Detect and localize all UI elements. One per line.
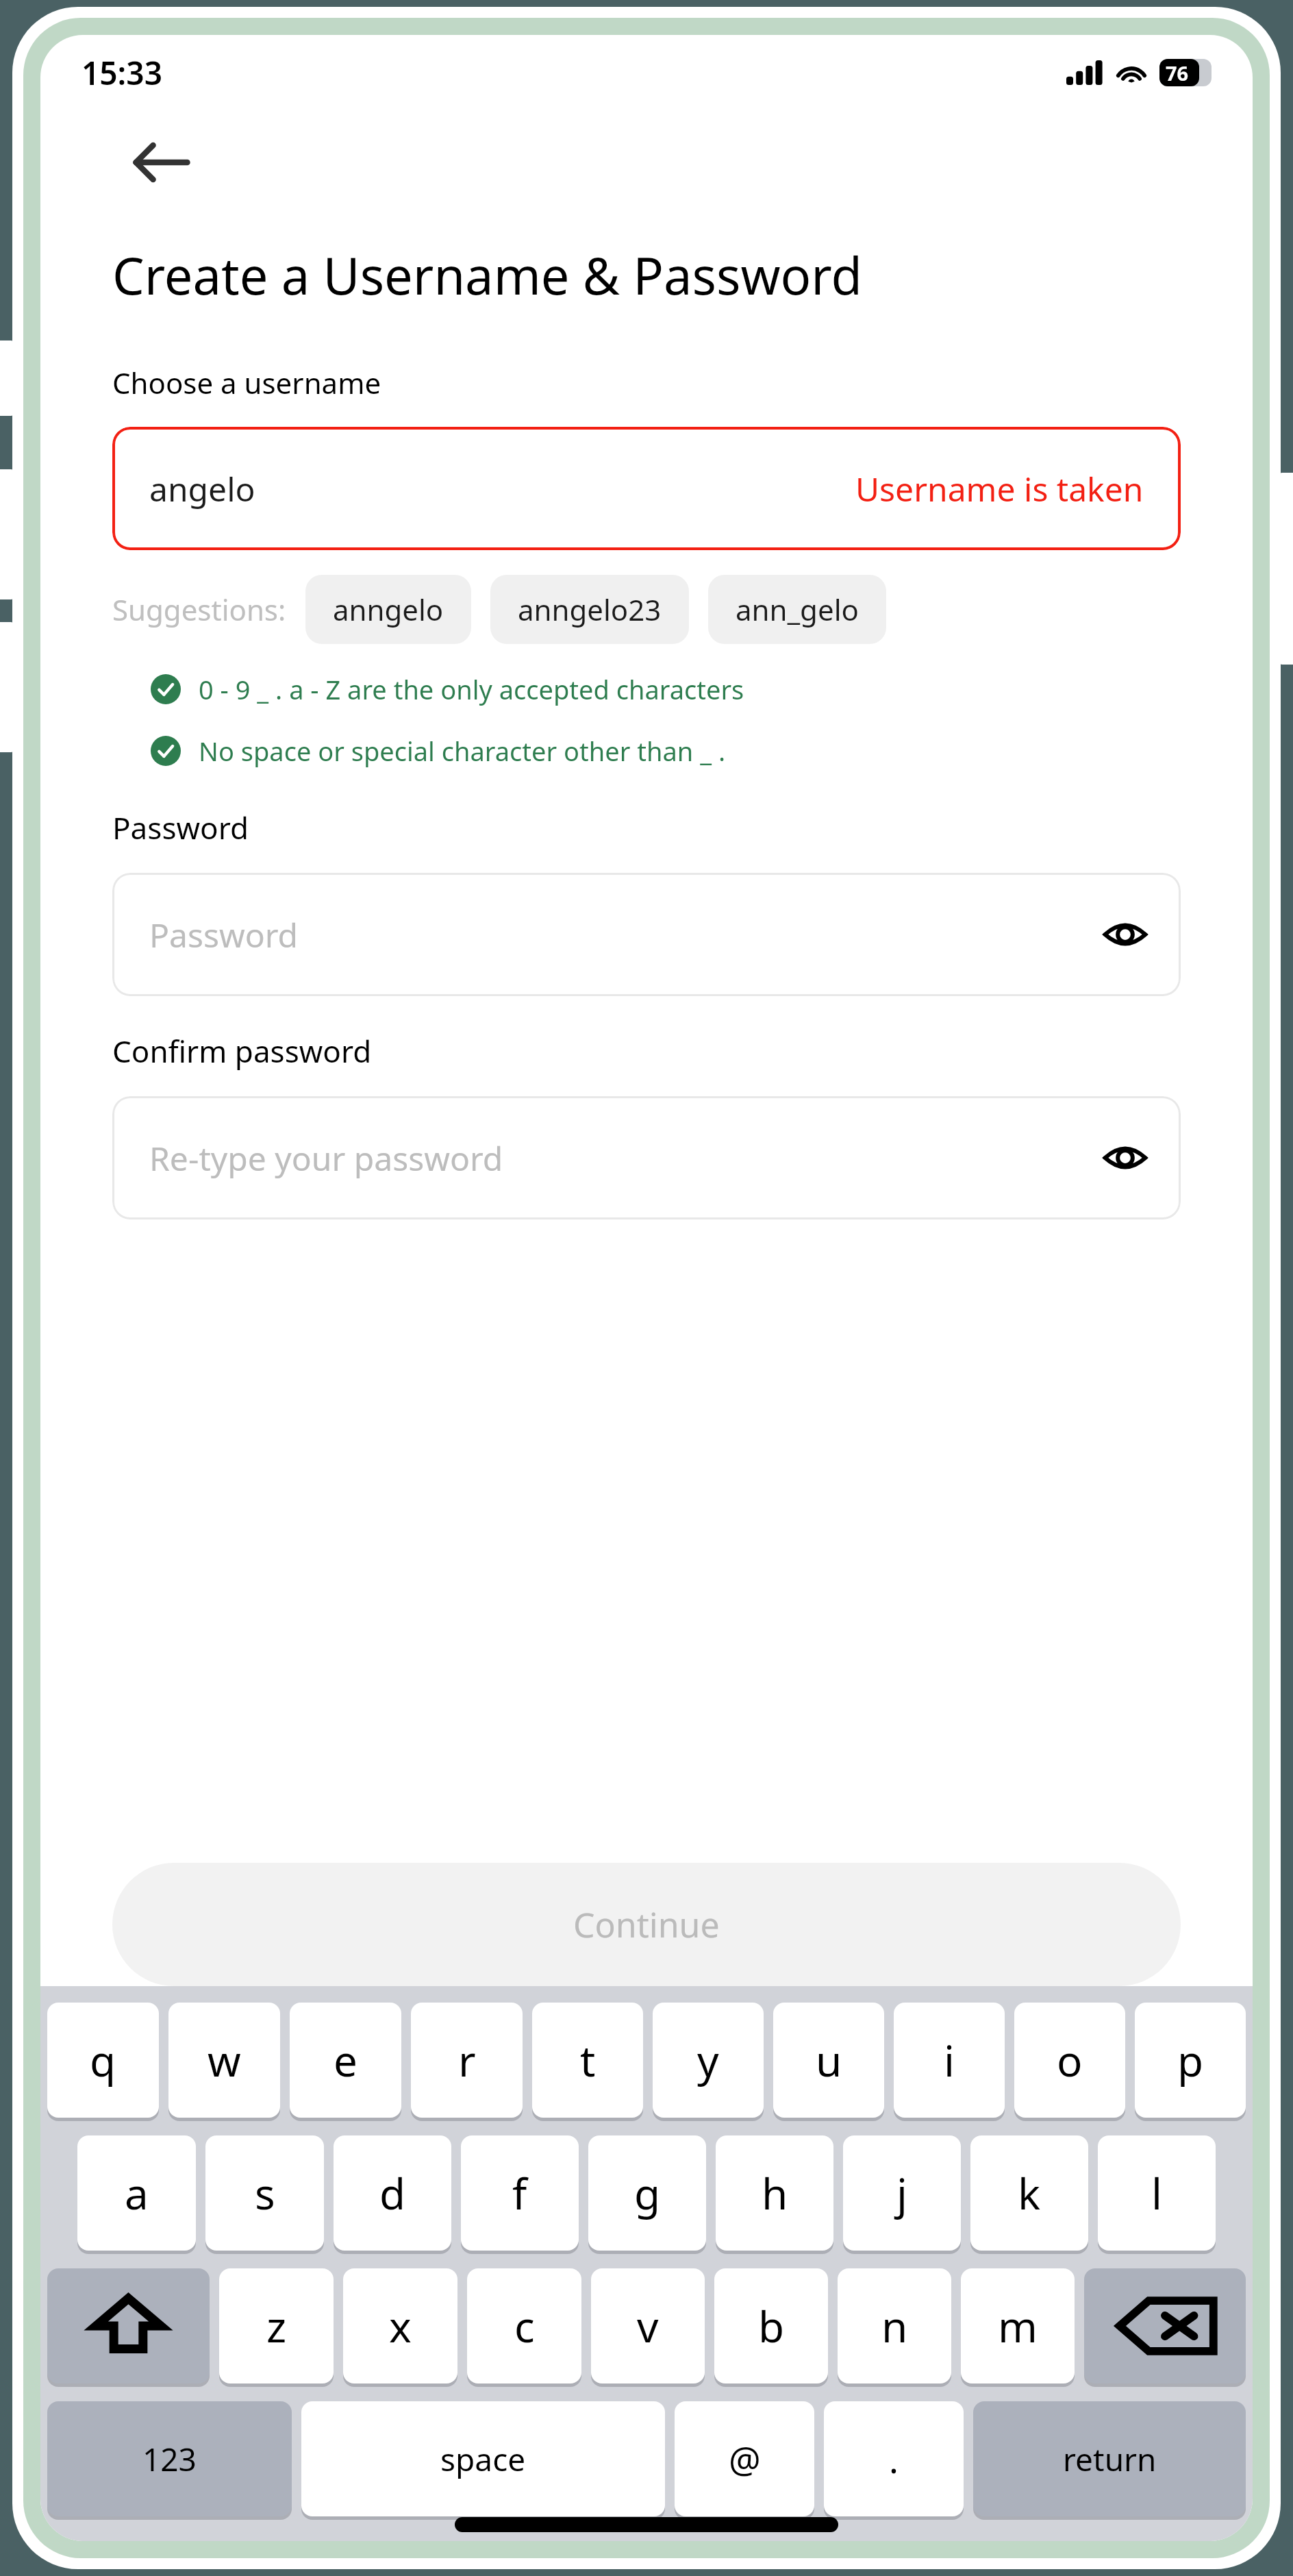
- button[interactable]: n: [838, 2268, 951, 2383]
- staticText: e: [334, 2031, 357, 2089]
- staticText: q: [90, 2031, 116, 2089]
- staticText: u: [816, 2031, 842, 2089]
- button[interactable]: Backspace: [1084, 2268, 1246, 2383]
- button[interactable]: .: [824, 2401, 964, 2516]
- staticText: a: [125, 2164, 149, 2222]
- staticText: space: [440, 2438, 526, 2481]
- button[interactable]: anngelo: [305, 575, 471, 644]
- staticText: v: [637, 2297, 659, 2355]
- button[interactable]: b: [714, 2268, 828, 2383]
- button[interactable]: anngelo23: [490, 575, 689, 644]
- staticText: 15:33: [81, 51, 162, 95]
- button[interactable]: h: [716, 2135, 833, 2251]
- button[interactable]: j: [843, 2135, 961, 2251]
- button[interactable]: @: [675, 2401, 814, 2516]
- button[interactable]: k: [970, 2135, 1088, 2251]
- button[interactable]: q: [47, 2003, 159, 2118]
- button[interactable]: w: [168, 2003, 280, 2118]
- button[interactable]: d: [334, 2135, 451, 2251]
- button[interactable]: g: [588, 2135, 706, 2251]
- staticText: 0 - 9 _ . a - Z are the only accepted ch…: [199, 671, 744, 707]
- button[interactable]: Shift: [47, 2268, 210, 2383]
- staticText: Username is taken: [855, 467, 1144, 511]
- staticText: z: [266, 2297, 287, 2355]
- button[interactable]: a: [77, 2135, 196, 2251]
- staticText: t: [580, 2031, 596, 2089]
- staticText: i: [944, 2031, 955, 2089]
- staticText: j: [896, 2164, 907, 2222]
- staticText: c: [514, 2297, 535, 2355]
- staticText: g: [634, 2164, 661, 2222]
- staticText: ann_gelo: [736, 590, 859, 629]
- button[interactable]: c: [467, 2268, 581, 2383]
- button[interactable]: z: [219, 2268, 334, 2383]
- button[interactable]: t: [532, 2003, 643, 2118]
- staticText: return: [1063, 2438, 1157, 2481]
- button[interactable]: Show password: [1101, 1134, 1149, 1182]
- staticText: 123: [142, 2438, 197, 2481]
- staticText: d: [379, 2164, 406, 2222]
- staticText: Continue: [573, 1901, 720, 1948]
- button[interactable]: Show password: [1101, 911, 1149, 958]
- staticText: Suggestions:: [112, 590, 286, 629]
- button[interactable]: Password: [112, 873, 1181, 996]
- staticText: k: [1018, 2164, 1041, 2222]
- button[interactable]: x: [343, 2268, 457, 2383]
- staticText: o: [1057, 2031, 1083, 2089]
- button[interactable]: y: [653, 2003, 764, 2118]
- staticText: @: [729, 2435, 761, 2484]
- button[interactable]: space: [301, 2401, 665, 2516]
- staticText: f: [512, 2164, 527, 2222]
- staticText: Password: [149, 913, 299, 957]
- staticText: Re-type your password: [149, 1136, 503, 1180]
- button[interactable]: e: [290, 2003, 401, 2118]
- button[interactable]: return: [973, 2401, 1246, 2516]
- staticText: s: [255, 2164, 275, 2222]
- staticText: Password: [112, 807, 249, 848]
- staticText: n: [881, 2297, 908, 2355]
- staticText: .: [889, 2435, 899, 2484]
- staticText: l: [1151, 2164, 1162, 2222]
- staticText: w: [208, 2031, 241, 2089]
- button[interactable]: Continue: [112, 1863, 1181, 1986]
- staticText: p: [1177, 2031, 1204, 2089]
- button[interactable]: o: [1014, 2003, 1125, 2118]
- button[interactable]: r: [411, 2003, 523, 2118]
- staticText: anngelo23: [518, 590, 662, 629]
- button[interactable]: l: [1098, 2135, 1216, 2251]
- staticText: h: [762, 2164, 788, 2222]
- button[interactable]: ann_gelo: [708, 575, 886, 644]
- staticText: No space or special character other than…: [199, 733, 726, 769]
- button[interactable]: i: [894, 2003, 1005, 2118]
- staticText: angelo: [149, 467, 255, 511]
- button[interactable]: s: [205, 2135, 324, 2251]
- staticText: anngelo: [333, 590, 444, 629]
- button[interactable]: v: [591, 2268, 705, 2383]
- staticText: m: [998, 2297, 1038, 2355]
- staticText: 76: [1166, 60, 1189, 86]
- button[interactable]: Back: [129, 129, 195, 195]
- button[interactable]: angelo: [112, 427, 1181, 550]
- staticText: Confirm password: [112, 1030, 372, 1072]
- staticText: r: [458, 2031, 476, 2089]
- button[interactable]: f: [461, 2135, 579, 2251]
- button[interactable]: Re-type your password: [112, 1096, 1181, 1219]
- button[interactable]: p: [1135, 2003, 1246, 2118]
- staticText: x: [389, 2297, 412, 2355]
- staticText: Choose a username: [112, 363, 381, 402]
- button[interactable]: u: [773, 2003, 884, 2118]
- staticText: Create a Username & Password: [112, 240, 862, 310]
- staticText: b: [758, 2297, 785, 2355]
- staticText: y: [697, 2031, 719, 2089]
- button[interactable]: m: [961, 2268, 1075, 2383]
- button[interactable]: 123: [47, 2401, 292, 2516]
